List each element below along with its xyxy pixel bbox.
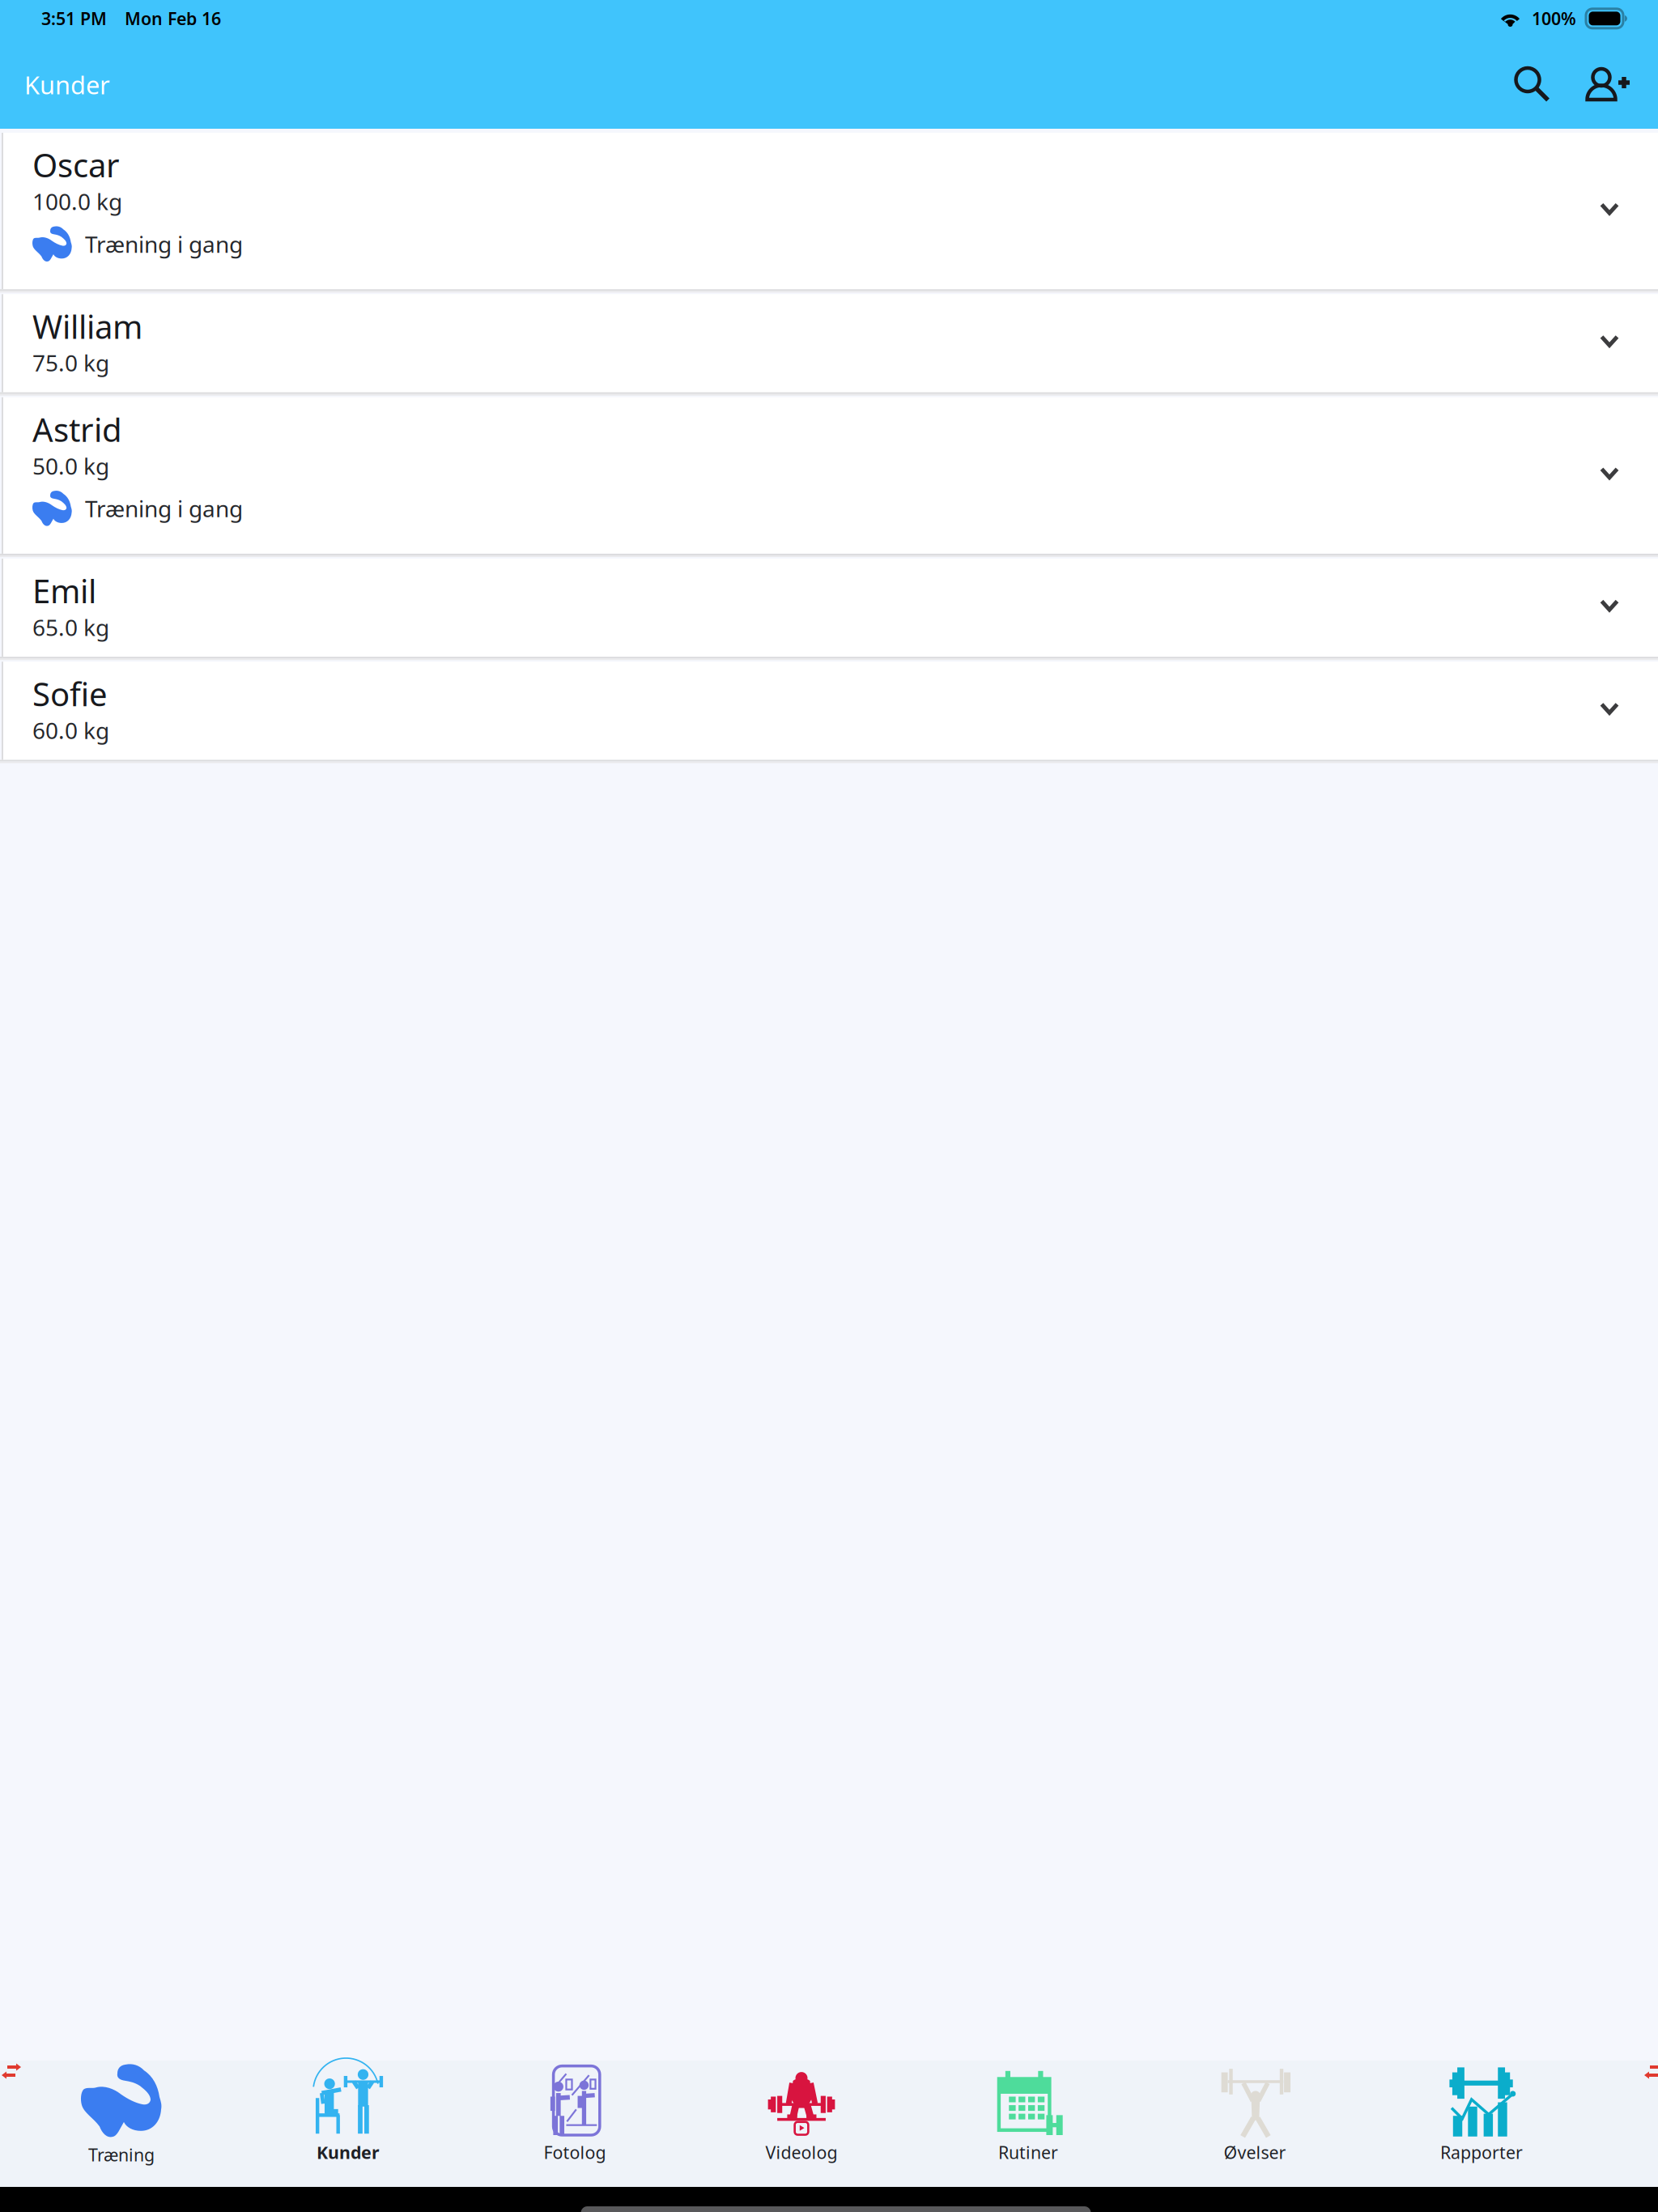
button[interactable]: Rutiner bbox=[915, 2061, 1141, 2187]
button[interactable]: Add client bbox=[1569, 51, 1647, 128]
staticText: Kunder bbox=[317, 2141, 380, 2164]
staticText: Videolog bbox=[765, 2141, 838, 2164]
button[interactable]: Kunder bbox=[235, 2061, 461, 2187]
staticText: 100.0 kg bbox=[32, 186, 122, 216]
button[interactable]: Oscar bbox=[0, 133, 1658, 289]
staticText: 65.0 kg bbox=[32, 612, 109, 642]
button[interactable]: William bbox=[0, 294, 1658, 392]
button[interactable]: Emil bbox=[0, 559, 1658, 657]
staticText: 100% bbox=[1532, 7, 1576, 30]
staticText: Astrid bbox=[32, 408, 122, 451]
staticText: William bbox=[32, 305, 142, 348]
staticText: 3:51 PM bbox=[41, 7, 107, 30]
staticText: 75.0 kg bbox=[32, 348, 109, 378]
staticText: Træning i gang bbox=[85, 493, 243, 523]
button[interactable]: Fotolog bbox=[461, 2061, 688, 2187]
button[interactable]: Sofie bbox=[0, 662, 1658, 760]
staticText: Rapporter bbox=[1440, 2141, 1523, 2164]
staticText: Sofie bbox=[32, 672, 108, 715]
staticText: Rutiner bbox=[998, 2141, 1058, 2164]
button[interactable]: Astrid bbox=[0, 397, 1658, 554]
staticText: Træning i gang bbox=[85, 229, 243, 259]
button[interactable]: Øvelser bbox=[1141, 2061, 1368, 2187]
button[interactable]: Videolog bbox=[688, 2061, 915, 2187]
button[interactable]: Træning bbox=[8, 2061, 235, 2187]
staticText: Mon Feb 16 bbox=[125, 7, 221, 30]
staticText: Træning bbox=[88, 2143, 155, 2166]
staticText: Øvelser bbox=[1224, 2141, 1286, 2164]
staticText: Fotolog bbox=[544, 2141, 606, 2164]
staticText: Emil bbox=[32, 569, 96, 612]
staticText: Kunder bbox=[24, 68, 110, 101]
staticText: Oscar bbox=[32, 143, 120, 186]
button[interactable]: Search bbox=[1494, 51, 1569, 128]
button[interactable]: Rapporter bbox=[1368, 2061, 1595, 2187]
staticText: 50.0 kg bbox=[32, 451, 109, 481]
staticText: 60.0 kg bbox=[32, 715, 109, 745]
